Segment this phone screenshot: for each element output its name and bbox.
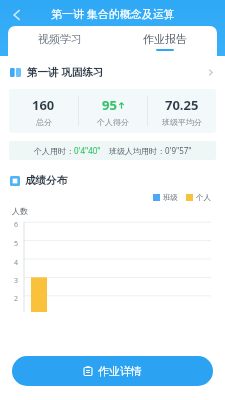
- staticText: 第一讲 巩固练习: [27, 65, 104, 79]
- staticText: 3: [13, 276, 18, 286]
- staticText: 第一讲 集合的概念及运算: [51, 6, 175, 21]
- staticText: 70.25: [165, 96, 199, 114]
- staticText: 95: [102, 96, 117, 114]
- staticText: 人数: [12, 206, 28, 216]
- staticText: 5: [13, 239, 18, 249]
- staticText: 2: [13, 294, 18, 304]
- staticText: 作业报告: [143, 32, 187, 46]
- staticText: 作业详情: [98, 364, 142, 378]
- button[interactable]: Back: [4, 2, 30, 28]
- staticText: 0'9"57": [165, 145, 192, 156]
- button[interactable]: 作业报告: [112, 26, 217, 56]
- staticText: 6: [13, 220, 18, 230]
- button[interactable]: 160: [9, 89, 78, 133]
- staticText: 视频学习: [38, 32, 82, 46]
- staticText: 4: [13, 258, 18, 268]
- staticText: 成绩分布: [25, 174, 67, 187]
- button[interactable]: 视频学习: [8, 26, 112, 56]
- staticText: 总分: [36, 117, 52, 127]
- staticText: 0'4"40": [74, 145, 101, 156]
- staticText: 班级人均用时：: [109, 146, 165, 156]
- staticText: 160: [32, 96, 55, 114]
- staticText: 个人: [196, 193, 211, 202]
- staticText: 个人用时：: [34, 146, 74, 156]
- button[interactable]: 第一讲 巩固练习: [10, 60, 215, 84]
- staticText: 班级: [163, 193, 178, 202]
- button[interactable]: 95: [79, 89, 147, 133]
- staticText: 个人得分: [97, 117, 129, 127]
- staticText: 班级平均分: [162, 117, 202, 127]
- button[interactable]: 作业详情: [12, 356, 213, 386]
- button[interactable]: 70.25: [148, 89, 216, 133]
